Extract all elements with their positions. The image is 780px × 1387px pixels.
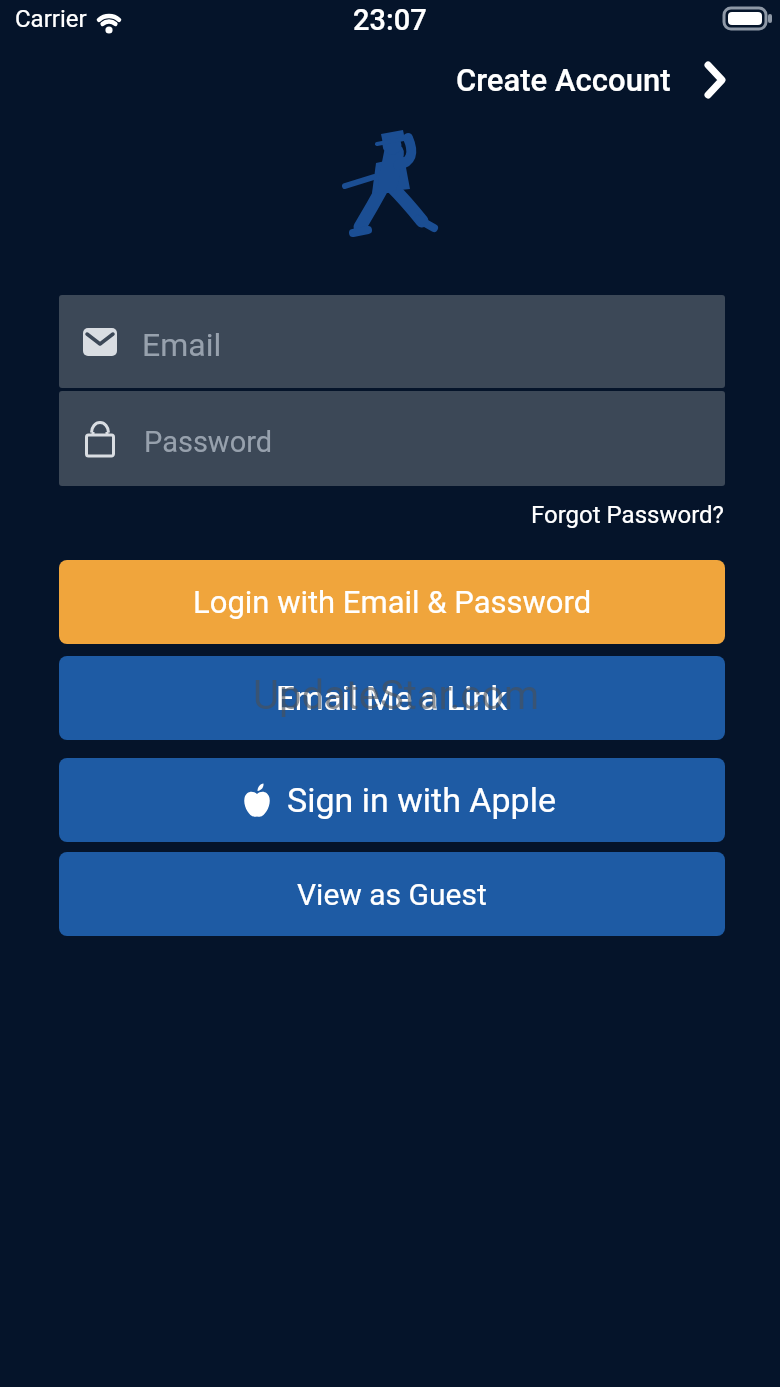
button[interactable]: Email Me a Link	[59, 656, 725, 740]
staticText: Login with Email & Password	[193, 584, 592, 620]
staticText: Password	[144, 425, 273, 459]
staticText: Forgot Password?	[531, 501, 724, 529]
staticText: UpdateStar.com	[253, 672, 540, 719]
button[interactable]: Login with Email & Password	[59, 560, 725, 644]
button[interactable]: Password	[59, 391, 725, 486]
staticText: View as Guest	[297, 877, 487, 912]
button[interactable]: Create Account	[456, 61, 727, 99]
button[interactable]: Email	[59, 295, 725, 388]
staticText: 23:07	[353, 3, 427, 37]
staticText: Carrier	[15, 5, 87, 33]
button[interactable]: Sign in with Apple	[59, 758, 725, 842]
staticText: Email	[142, 326, 222, 364]
button[interactable]: View as Guest	[59, 852, 725, 936]
staticText: Sign in with Apple	[287, 780, 556, 820]
staticText: Email Me a Link	[276, 679, 508, 718]
staticText: Create Account	[456, 62, 671, 98]
button[interactable]: Forgot Password?	[531, 501, 724, 529]
